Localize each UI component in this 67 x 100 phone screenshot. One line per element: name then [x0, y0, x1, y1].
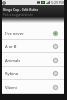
- button[interactable]: A or B: [2, 39, 64, 53]
- staticText: A or B: [5, 44, 17, 49]
- staticText: Animals: [5, 58, 21, 63]
- button[interactable]: Rybina: [2, 66, 64, 80]
- staticText: I've never: [5, 31, 24, 36]
- staticText: Kings Cup - Edit Rules: [3, 7, 39, 11]
- staticText: 5:29 PM: [51, 0, 65, 5]
- staticText: Rybina: [5, 71, 18, 76]
- staticText: Vibeni: [5, 85, 17, 90]
- button[interactable]: Vibeni: [2, 80, 64, 94]
- staticText: Pick a suggested rule: [3, 13, 33, 17]
- button[interactable]: Animals: [2, 53, 64, 67]
- button[interactable]: I've never: [2, 26, 64, 40]
